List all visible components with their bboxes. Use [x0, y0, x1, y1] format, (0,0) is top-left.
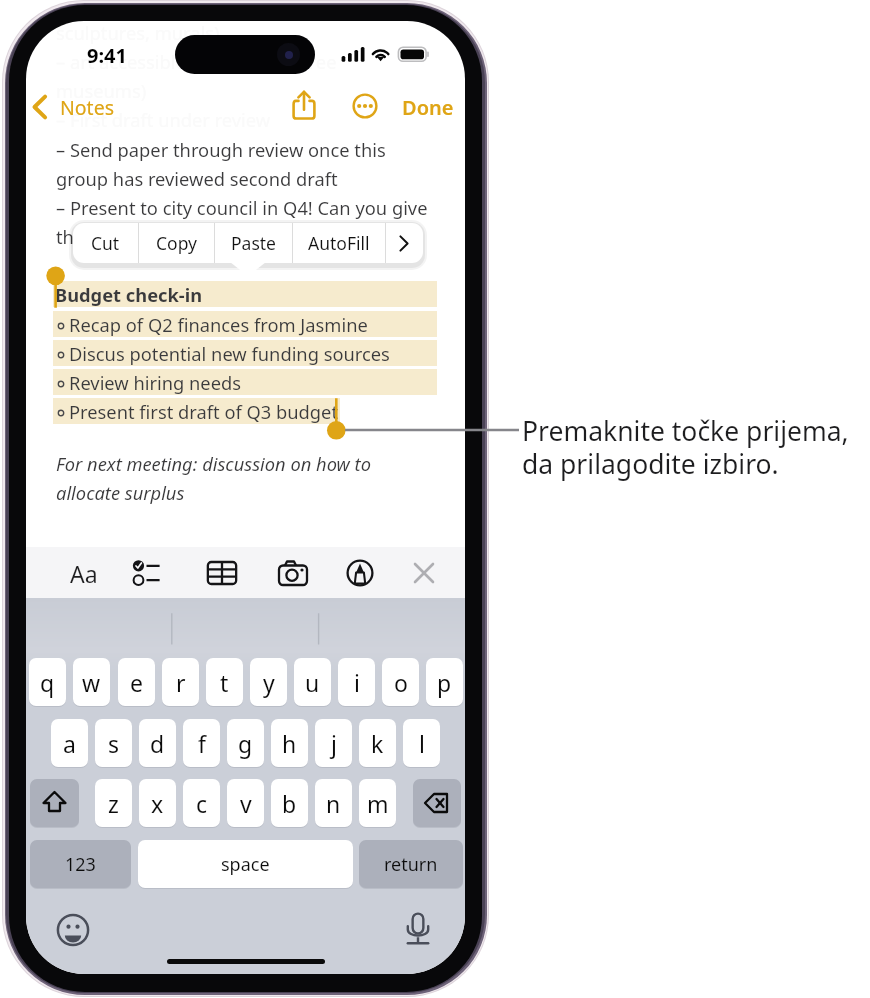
- button[interactable]: Done: [396, 88, 460, 126]
- button[interactable]: s: [95, 719, 132, 767]
- staticText: r: [176, 667, 186, 698]
- button[interactable]: i: [338, 658, 375, 706]
- button[interactable]: 123: [30, 840, 131, 888]
- staticText: Cut: [91, 231, 120, 255]
- staticText: q: [40, 667, 55, 698]
- staticText: k: [371, 728, 384, 759]
- button[interactable]: v: [227, 779, 264, 827]
- staticText: 123: [65, 852, 96, 877]
- staticText: a: [63, 728, 76, 759]
- button[interactable]: h: [271, 719, 308, 767]
- button[interactable]: Camera: [271, 551, 315, 595]
- staticText: b: [282, 788, 297, 819]
- button[interactable]: w: [73, 658, 110, 706]
- staticText: Premaknite točke prijema, da prilagodite…: [522, 413, 849, 482]
- button[interactable]: c: [183, 779, 220, 827]
- staticText: – Send paper through review once this gr…: [56, 137, 428, 249]
- button[interactable]: Dictation: [398, 910, 438, 950]
- button[interactable]: p: [426, 658, 463, 706]
- button[interactable]: Notes: [32, 88, 114, 126]
- staticText: return: [384, 852, 438, 877]
- button[interactable]: Shift: [30, 779, 79, 827]
- button[interactable]: n: [315, 779, 352, 827]
- button[interactable]: k: [359, 719, 396, 767]
- staticText: AutoFill: [308, 231, 370, 255]
- staticText: w: [82, 667, 101, 698]
- staticText: Notes: [60, 94, 114, 121]
- staticText: x: [151, 788, 164, 819]
- button[interactable]: l: [403, 719, 440, 767]
- button[interactable]: Format: [62, 551, 106, 595]
- button[interactable]: More actions: [386, 223, 423, 263]
- button[interactable]: Table: [200, 551, 244, 595]
- staticText: p: [437, 667, 452, 698]
- staticText: Paste: [231, 231, 276, 255]
- button[interactable]: e: [118, 658, 155, 706]
- staticText: i: [354, 667, 360, 698]
- staticText: u: [305, 667, 320, 698]
- staticText: sculptures, murals) – art accessible to …: [56, 21, 337, 132]
- button[interactable]: x: [139, 779, 176, 827]
- button[interactable]: Copy: [139, 223, 214, 263]
- button[interactable]: Share: [283, 85, 325, 127]
- staticText: space: [221, 852, 270, 877]
- staticText: l: [419, 728, 425, 759]
- staticText: v: [240, 788, 252, 819]
- button[interactable]: space: [138, 840, 353, 888]
- staticText: For next meeting: discussion on how to a…: [56, 451, 371, 505]
- staticText: t: [220, 667, 229, 698]
- staticText: Present first draft of Q3 budget: [69, 399, 339, 424]
- button[interactable]: Emoji: [53, 910, 93, 950]
- button[interactable]: More options: [344, 85, 386, 127]
- button[interactable]: t: [206, 658, 243, 706]
- staticText: m: [367, 788, 389, 819]
- button[interactable]: Close: [402, 551, 446, 595]
- staticText: g: [238, 728, 253, 759]
- staticText: e: [130, 667, 143, 698]
- staticText: Recap of Q2 finances from Jasmine: [69, 312, 368, 337]
- button[interactable]: AutoFill: [293, 223, 385, 263]
- staticText: Discus potential new funding sources: [69, 341, 390, 366]
- staticText: Done: [402, 94, 454, 121]
- button[interactable]: Paste: [215, 223, 292, 263]
- button[interactable]: u: [294, 658, 331, 706]
- button[interactable]: Backspace: [413, 779, 461, 827]
- staticText: d: [150, 728, 165, 759]
- staticText: s: [108, 728, 120, 759]
- button[interactable]: return: [359, 840, 463, 888]
- staticText: z: [108, 788, 119, 819]
- staticText: n: [326, 788, 341, 819]
- staticText: Review hiring needs: [69, 370, 242, 395]
- button[interactable]: a: [51, 719, 88, 767]
- button[interactable]: f: [183, 719, 220, 767]
- staticText: j: [331, 728, 337, 759]
- staticText: Copy: [156, 231, 197, 255]
- staticText: y: [263, 667, 275, 698]
- button[interactable]: Checklist: [128, 551, 172, 595]
- staticText: h: [282, 728, 297, 759]
- button[interactable]: y: [250, 658, 287, 706]
- staticText: c: [196, 788, 208, 819]
- staticText: 9:41: [87, 42, 127, 66]
- staticText: Aa: [70, 558, 98, 589]
- button[interactable]: o: [382, 658, 419, 706]
- button[interactable]: Markup: [338, 551, 382, 595]
- button[interactable]: r: [162, 658, 199, 706]
- button[interactable]: d: [139, 719, 176, 767]
- button[interactable]: g: [227, 719, 264, 767]
- staticText: Budget check-in: [55, 282, 203, 307]
- staticText: f: [198, 728, 206, 759]
- button[interactable]: m: [359, 779, 396, 827]
- staticText: o: [394, 667, 408, 698]
- button[interactable]: b: [271, 779, 308, 827]
- button[interactable]: Cut: [73, 223, 138, 263]
- button[interactable]: j: [315, 719, 352, 767]
- button[interactable]: z: [95, 779, 132, 827]
- button[interactable]: q: [29, 658, 66, 706]
